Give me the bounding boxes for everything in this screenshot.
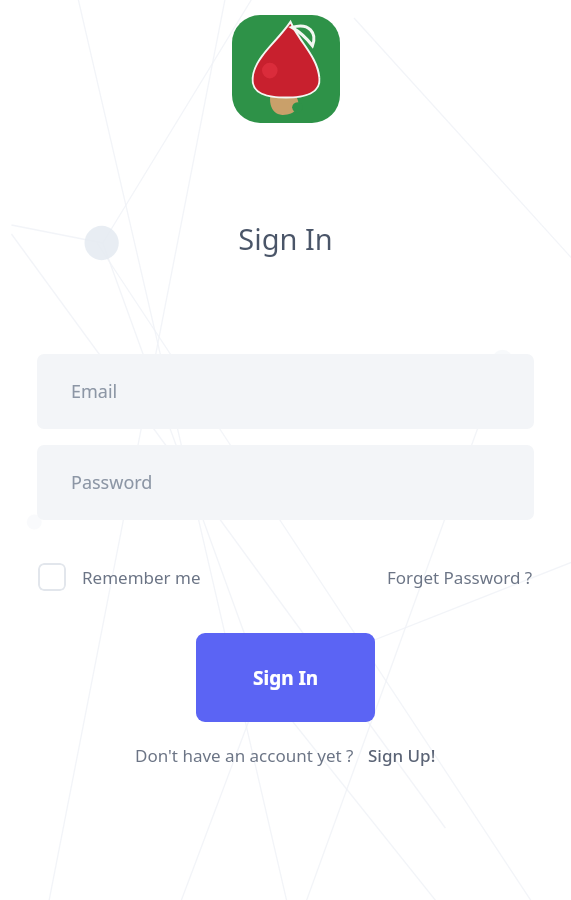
other: App logo — [232, 5, 340, 133]
staticText: Password — [71, 470, 153, 495]
staticText: Sign In — [238, 219, 333, 258]
staticText: Remember me — [82, 566, 201, 589]
staticText: Forget Password ? — [387, 566, 533, 589]
button[interactable]: Remember me — [38, 563, 201, 591]
button[interactable]: Sign In — [196, 633, 375, 722]
staticText: Sign Up! — [368, 744, 436, 767]
staticText: Email — [71, 379, 118, 404]
button[interactable]: Password — [37, 445, 534, 520]
staticText: Sign In — [253, 665, 319, 691]
staticText: Don't have an account yet ? — [135, 744, 354, 767]
button[interactable]: Forget Password ? — [387, 566, 533, 589]
button[interactable]: Sign Up! — [368, 744, 436, 767]
button[interactable]: Email — [37, 354, 534, 429]
